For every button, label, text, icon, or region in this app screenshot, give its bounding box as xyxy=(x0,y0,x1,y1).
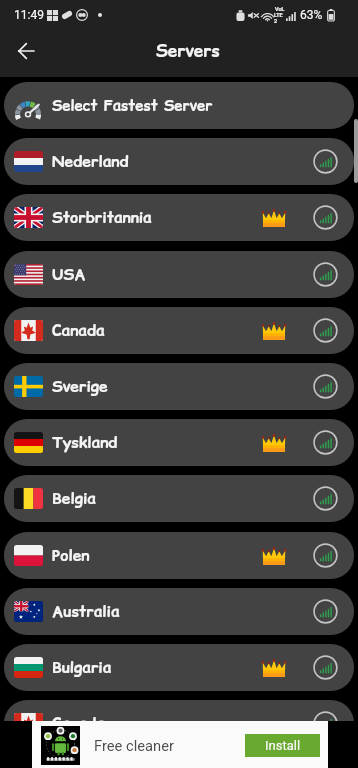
button[interactable]: Canada xyxy=(4,700,354,747)
button[interactable]: Canada xyxy=(4,307,354,354)
staticText: Sverige xyxy=(52,376,108,398)
staticText: Free cleaner xyxy=(94,737,174,754)
button[interactable]: Storbritannia xyxy=(4,194,354,241)
button[interactable]: Sverige xyxy=(4,363,354,410)
button[interactable]: Australia xyxy=(4,588,354,635)
button[interactable]: Back xyxy=(6,31,46,71)
button[interactable]: Polen xyxy=(4,532,354,579)
staticText: Polen xyxy=(52,545,90,567)
staticText: Australia xyxy=(52,601,120,623)
staticText: 11:49 xyxy=(14,8,44,22)
staticText: LTE2 xyxy=(274,12,285,24)
button[interactable]: Belgia xyxy=(4,475,354,522)
staticText: Canada xyxy=(52,713,105,735)
staticText: Bulgaria xyxy=(52,657,112,679)
staticText: Select Fastest Server xyxy=(52,95,213,116)
button[interactable]: Free cleaner xyxy=(32,721,328,768)
button[interactable]: Install xyxy=(245,734,320,757)
button[interactable]: Tyskland xyxy=(4,419,354,466)
staticText: USA xyxy=(52,264,86,286)
button[interactable]: Select Fastest Server xyxy=(4,82,354,129)
staticText: Install xyxy=(265,738,301,753)
button[interactable]: USA xyxy=(4,251,354,298)
staticText: 63% xyxy=(300,8,323,22)
staticText: Storbritannia xyxy=(52,207,152,229)
button[interactable]: Bulgaria xyxy=(4,644,354,691)
staticText: Nederland xyxy=(52,151,129,173)
button[interactable]: Nederland xyxy=(4,138,354,185)
staticText: Belgia xyxy=(52,488,96,510)
staticText: Tyskland xyxy=(52,432,118,454)
staticText: Servers xyxy=(156,39,220,63)
staticText: Canada xyxy=(52,320,105,342)
staticText: VoL xyxy=(275,6,285,12)
